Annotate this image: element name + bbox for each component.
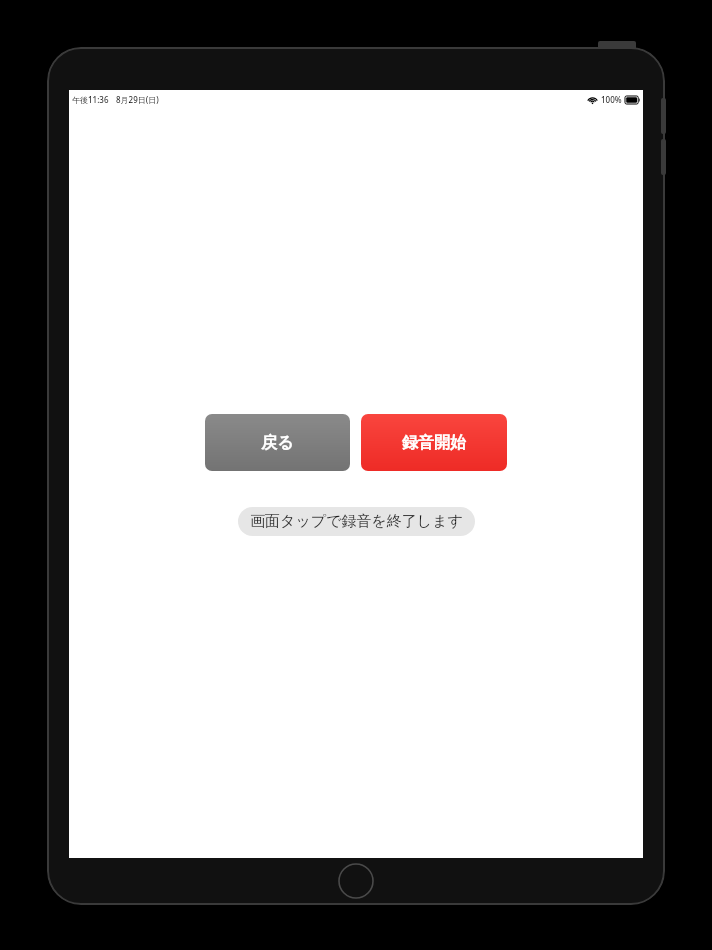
staticText: 100%	[601, 94, 622, 105]
staticText: 画面タップで録音を終了します	[250, 512, 463, 531]
button[interactable]: Home	[338, 863, 374, 899]
staticText: 戻る	[261, 433, 294, 453]
staticText: 8月29日(日)	[116, 94, 159, 105]
button[interactable]: 戻る	[205, 414, 350, 471]
button[interactable]: 画面タップで録音を終了します	[238, 507, 475, 536]
staticText: 録音開始	[402, 433, 466, 453]
staticText: 午後11:36	[72, 94, 109, 105]
button[interactable]: 録音開始	[361, 414, 507, 471]
